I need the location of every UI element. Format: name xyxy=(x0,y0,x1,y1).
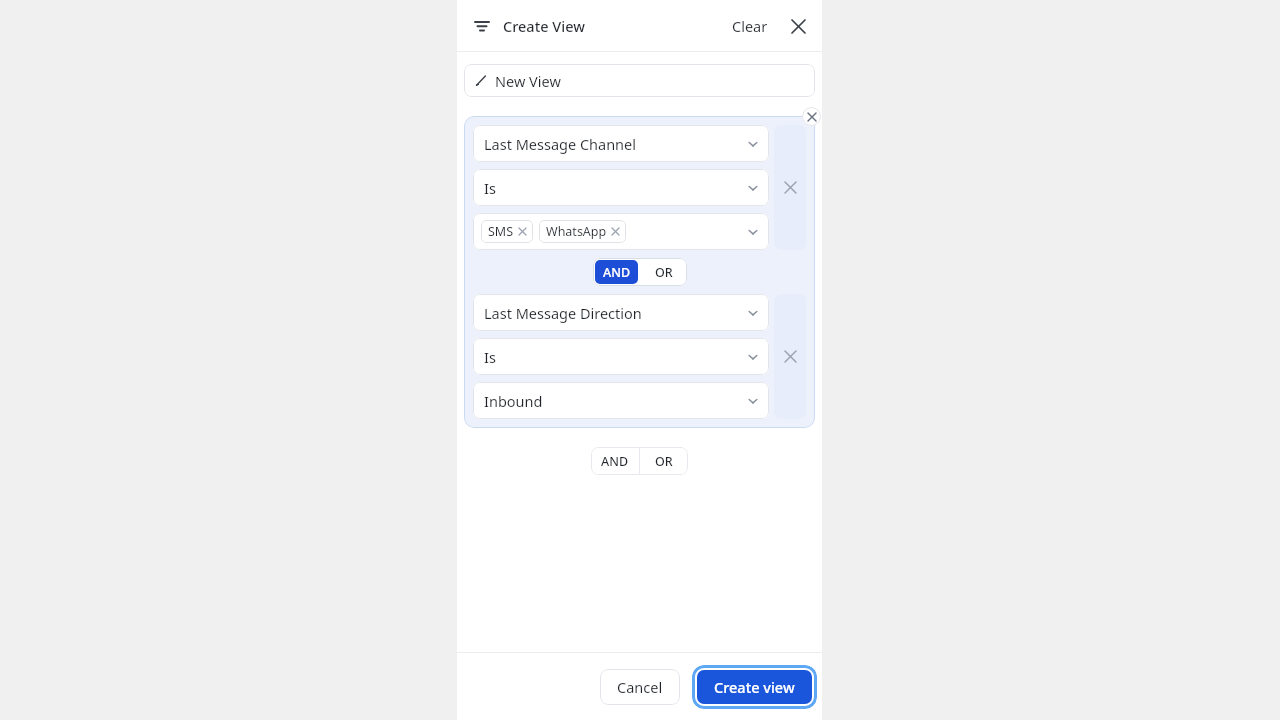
staticText: AND xyxy=(603,264,631,281)
button[interactable]: OR xyxy=(640,447,688,475)
button[interactable]: SMS xyxy=(473,213,769,250)
button[interactable]: Close xyxy=(784,12,812,40)
button[interactable]: Is xyxy=(473,169,769,206)
button[interactable]: Remove condition xyxy=(774,294,806,419)
staticText: Clear xyxy=(732,16,768,36)
staticText: Is xyxy=(484,178,496,198)
staticText: Is xyxy=(484,347,496,367)
staticText: Last Message Channel xyxy=(484,134,637,154)
button[interactable]: OR xyxy=(642,260,685,284)
button[interactable]: Clear xyxy=(726,12,774,40)
button[interactable]: Last Message Channel xyxy=(473,125,769,162)
button[interactable]: Filter xyxy=(467,11,497,41)
staticText: Create view xyxy=(714,677,795,697)
staticText: Inbound xyxy=(484,391,543,411)
staticText: AND xyxy=(601,453,629,470)
button[interactable]: Create view xyxy=(697,670,812,704)
staticText: OR xyxy=(655,264,673,281)
button[interactable]: Cancel xyxy=(600,669,680,705)
staticText: New View xyxy=(495,71,561,91)
button[interactable]: Last Message Direction xyxy=(473,294,769,331)
button[interactable]: WhatsApp xyxy=(539,220,626,243)
staticText: Last Message Direction xyxy=(484,303,642,323)
button[interactable]: Remove group xyxy=(802,107,821,126)
button[interactable]: Is xyxy=(473,338,769,375)
staticText: OR xyxy=(655,453,673,470)
button[interactable]: New View xyxy=(464,64,815,97)
button[interactable]: Remove condition xyxy=(774,125,806,250)
button[interactable]: AND xyxy=(595,260,638,284)
button[interactable]: AND xyxy=(591,447,639,475)
staticText: WhatsApp xyxy=(546,223,607,240)
button[interactable]: Inbound xyxy=(473,382,769,419)
staticText: SMS xyxy=(488,223,514,240)
button[interactable]: SMS xyxy=(481,220,533,243)
staticText: Create View xyxy=(503,16,585,36)
staticText: Cancel xyxy=(617,677,663,697)
